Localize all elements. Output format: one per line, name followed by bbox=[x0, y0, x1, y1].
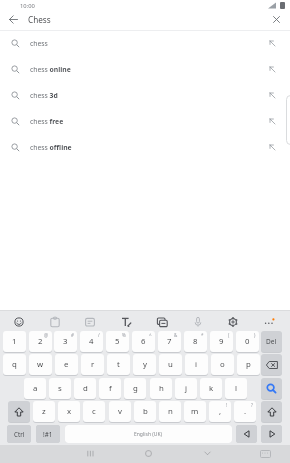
button[interactable] bbox=[261, 354, 282, 375]
button[interactable] bbox=[48, 315, 62, 329]
staticText: 0 bbox=[245, 336, 250, 347]
button[interactable]: c bbox=[83, 401, 105, 422]
staticText: ^ bbox=[149, 332, 152, 338]
button[interactable]: o bbox=[211, 354, 234, 375]
button[interactable]: English (UK) bbox=[65, 425, 232, 443]
button[interactable]: f bbox=[99, 378, 121, 399]
staticText: 4 bbox=[89, 336, 94, 347]
button[interactable] bbox=[273, 16, 280, 23]
staticText: Chess bbox=[28, 14, 51, 25]
button[interactable]: !#1 bbox=[36, 425, 60, 443]
button[interactable]: d bbox=[74, 378, 96, 399]
staticText: 6 bbox=[141, 336, 146, 347]
button[interactable] bbox=[269, 92, 276, 99]
button[interactable]: l bbox=[225, 378, 247, 399]
button[interactable] bbox=[261, 425, 282, 443]
staticText: p bbox=[246, 359, 251, 370]
staticText: r bbox=[91, 359, 95, 370]
button[interactable]: g bbox=[124, 378, 146, 399]
button[interactable]: chess offline bbox=[0, 134, 290, 160]
button[interactable]: 9 bbox=[210, 331, 233, 352]
staticText: t bbox=[117, 359, 120, 370]
staticText: . bbox=[244, 406, 247, 417]
button[interactable]: chess 3d bbox=[0, 82, 290, 108]
staticText: # bbox=[71, 332, 74, 338]
button[interactable] bbox=[155, 315, 169, 329]
button[interactable]: i bbox=[185, 354, 208, 375]
button[interactable]: k bbox=[200, 378, 222, 399]
staticText: l bbox=[235, 383, 238, 394]
button[interactable]: Del bbox=[261, 331, 282, 352]
staticText: n bbox=[168, 406, 173, 417]
button[interactable] bbox=[87, 450, 94, 457]
button[interactable] bbox=[269, 118, 276, 125]
button[interactable] bbox=[262, 315, 276, 329]
button[interactable] bbox=[119, 315, 133, 329]
button[interactable]: q bbox=[3, 354, 26, 375]
button[interactable] bbox=[12, 315, 26, 329]
button[interactable] bbox=[236, 425, 257, 443]
staticText: @ bbox=[44, 332, 49, 338]
staticText: Ctrl bbox=[14, 430, 25, 438]
button[interactable] bbox=[261, 401, 282, 422]
button[interactable]: j bbox=[175, 378, 197, 399]
button[interactable]: y bbox=[133, 354, 156, 375]
button[interactable] bbox=[191, 315, 205, 329]
button[interactable]: 2 bbox=[29, 331, 52, 352]
button[interactable] bbox=[269, 144, 276, 151]
button[interactable]: 8 bbox=[184, 331, 207, 352]
button[interactable]: 4 bbox=[80, 331, 103, 352]
button[interactable] bbox=[83, 315, 97, 329]
button[interactable]: 5 bbox=[106, 331, 129, 352]
button[interactable]: m bbox=[184, 401, 206, 422]
button[interactable]: chess online bbox=[0, 56, 290, 82]
button[interactable] bbox=[9, 15, 18, 24]
button[interactable] bbox=[269, 66, 276, 73]
button[interactable]: s bbox=[49, 378, 71, 399]
button[interactable]: 1 bbox=[3, 331, 26, 352]
staticText: m bbox=[191, 406, 199, 417]
staticText: Del bbox=[266, 337, 277, 346]
button[interactable]: b bbox=[134, 401, 156, 422]
button[interactable]: Ctrl bbox=[7, 425, 31, 443]
staticText: ( bbox=[228, 332, 230, 338]
staticText: d bbox=[83, 383, 88, 394]
button[interactable]: n bbox=[159, 401, 181, 422]
staticText: k bbox=[209, 383, 214, 394]
button[interactable]: 3 bbox=[54, 331, 77, 352]
button[interactable]: w bbox=[29, 354, 52, 375]
button[interactable]: 6 bbox=[132, 331, 155, 352]
button[interactable] bbox=[145, 450, 152, 457]
staticText: a bbox=[33, 383, 38, 394]
button[interactable] bbox=[226, 315, 240, 329]
button[interactable] bbox=[269, 40, 276, 47]
staticText: q bbox=[12, 359, 17, 370]
button[interactable]: a bbox=[24, 378, 46, 399]
button[interactable] bbox=[204, 451, 211, 458]
staticText: ) bbox=[254, 332, 256, 338]
button[interactable]: 7 bbox=[158, 331, 181, 352]
staticText: 1 bbox=[12, 336, 17, 347]
button[interactable]: , bbox=[209, 401, 231, 422]
staticText: w bbox=[37, 359, 44, 370]
button[interactable] bbox=[261, 378, 282, 399]
button[interactable]: . bbox=[234, 401, 256, 422]
staticText: 5 bbox=[115, 336, 120, 347]
staticText: z bbox=[42, 406, 46, 417]
button[interactable]: u bbox=[159, 354, 182, 375]
button[interactable] bbox=[8, 401, 30, 422]
button[interactable]: e bbox=[55, 354, 78, 375]
button[interactable]: x bbox=[58, 401, 80, 422]
button[interactable]: z bbox=[33, 401, 55, 422]
button[interactable]: v bbox=[109, 401, 131, 422]
button[interactable]: p bbox=[237, 354, 260, 375]
button[interactable]: Chess bbox=[0, 8, 290, 30]
button[interactable]: 0 bbox=[236, 331, 259, 352]
button[interactable]: chess free bbox=[0, 108, 290, 134]
button[interactable]: t bbox=[107, 354, 130, 375]
button[interactable]: chess bbox=[0, 30, 290, 56]
staticText: chess free bbox=[30, 117, 64, 126]
button[interactable]: r bbox=[81, 354, 104, 375]
button[interactable]: h bbox=[150, 378, 172, 399]
button[interactable] bbox=[260, 450, 271, 458]
